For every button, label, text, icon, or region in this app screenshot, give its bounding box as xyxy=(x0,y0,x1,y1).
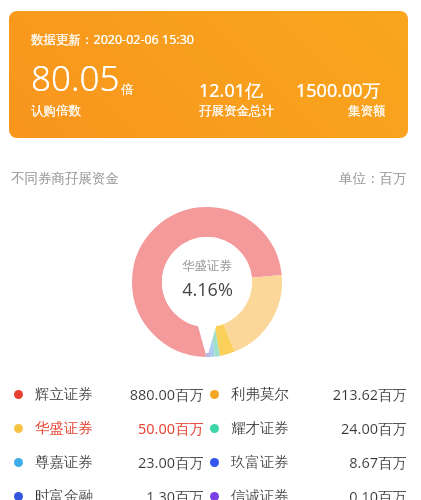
staticText: 华盛证券 xyxy=(182,258,232,274)
staticText: 尊嘉证券 xyxy=(35,453,93,471)
staticText: 玖富证券 xyxy=(231,453,289,471)
staticText: 213.62百万 xyxy=(332,384,407,404)
staticText: 利弗莫尔 xyxy=(231,385,289,403)
staticText: 24.00百万 xyxy=(340,418,407,438)
staticText: 孖展资金总计 xyxy=(199,103,274,119)
staticText: 12.01亿 xyxy=(199,78,264,103)
staticText: 信诚证券 xyxy=(231,487,289,500)
button[interactable]: 时富金融 xyxy=(14,479,204,500)
staticText: 辉立证券 xyxy=(35,385,93,403)
button[interactable]: 尊嘉证券 xyxy=(14,445,204,479)
staticText: 4.16% xyxy=(182,277,233,302)
staticText: 8.67百万 xyxy=(349,452,407,472)
staticText: 50.00百万 xyxy=(137,418,204,438)
button[interactable]: 玖富证券 xyxy=(210,445,407,479)
staticText: 时富金融 xyxy=(35,487,93,500)
button[interactable]: 孖展资金占比环形图 xyxy=(0,195,421,370)
staticText: 集资额 xyxy=(348,103,386,119)
staticText: 23.00百万 xyxy=(137,452,204,472)
button[interactable]: 数据更新：2020-02-06 15:30 xyxy=(9,11,408,138)
staticText: 数据更新：2020-02-06 15:30 xyxy=(31,31,194,48)
staticText: 0.10百万 xyxy=(349,486,407,500)
staticText: 华盛证券 xyxy=(35,419,93,437)
staticText: 880.00百万 xyxy=(129,384,204,404)
staticText: 1.30百万 xyxy=(146,486,204,500)
staticText: 倍 xyxy=(121,82,134,98)
button[interactable]: 辉立证券 xyxy=(14,377,204,411)
staticText: 认购倍数 xyxy=(31,103,81,119)
staticText: 单位：百万 xyxy=(339,170,407,187)
button[interactable]: 华盛证券 xyxy=(14,411,204,445)
staticText: 80.05 xyxy=(31,54,120,102)
staticText: 不同券商孖展资金 xyxy=(11,170,119,187)
button[interactable]: 信诚证券 xyxy=(210,479,407,500)
staticText: 1500.00万 xyxy=(296,78,381,103)
button[interactable]: 利弗莫尔 xyxy=(210,377,407,411)
staticText: 耀才证券 xyxy=(231,419,289,437)
button[interactable]: 耀才证券 xyxy=(210,411,407,445)
